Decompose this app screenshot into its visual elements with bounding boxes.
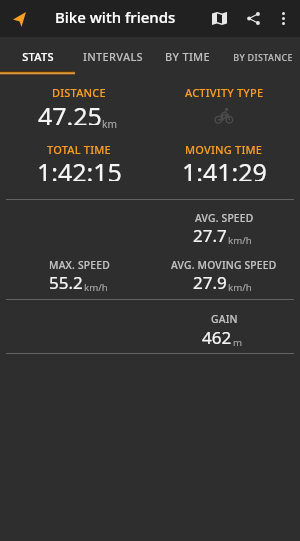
button[interactable]: More options — [268, 3, 299, 34]
button[interactable]: Navigate — [4, 3, 35, 34]
staticText: km/h — [84, 281, 108, 294]
staticText: BY TIME — [165, 49, 210, 64]
staticText: ACTIVITY TYPE — [185, 85, 264, 99]
staticText: AVG. MOVING SPEED — [171, 258, 277, 272]
staticText: MOVING TIME — [185, 142, 263, 156]
staticText: 462 — [202, 326, 232, 349]
button[interactable]: STATS — [0, 37, 75, 74]
staticText: BY DISTANCE — [233, 51, 293, 63]
staticText: 47.25 — [38, 99, 102, 125]
staticText: km — [102, 117, 117, 131]
staticText: 55.2 — [49, 271, 83, 294]
button[interactable]: INTERVALS — [75, 37, 150, 74]
staticText: DISTANCE — [52, 85, 106, 99]
staticText: km/h — [228, 281, 252, 294]
staticText: AVG. SPEED — [195, 211, 254, 225]
staticText: 1:42:15 — [37, 155, 122, 181]
button[interactable]: Map — [204, 3, 235, 34]
staticText: MAX. SPEED — [49, 258, 110, 272]
staticText: m — [233, 336, 243, 349]
staticText: km/h — [228, 234, 252, 247]
button[interactable]: Share — [238, 3, 269, 34]
button[interactable]: BY DISTANCE — [225, 37, 300, 74]
staticText: 1:41:29 — [182, 155, 267, 181]
staticText: TOTAL TIME — [47, 142, 111, 156]
staticText: GAIN — [211, 312, 238, 326]
staticText: 27.9 — [193, 271, 227, 294]
button[interactable]: BY TIME — [150, 37, 225, 74]
staticText: INTERVALS — [83, 49, 143, 64]
staticText: 27.7 — [193, 224, 227, 247]
staticText: Bike with friends — [55, 7, 176, 27]
staticText: STATS — [22, 49, 54, 64]
